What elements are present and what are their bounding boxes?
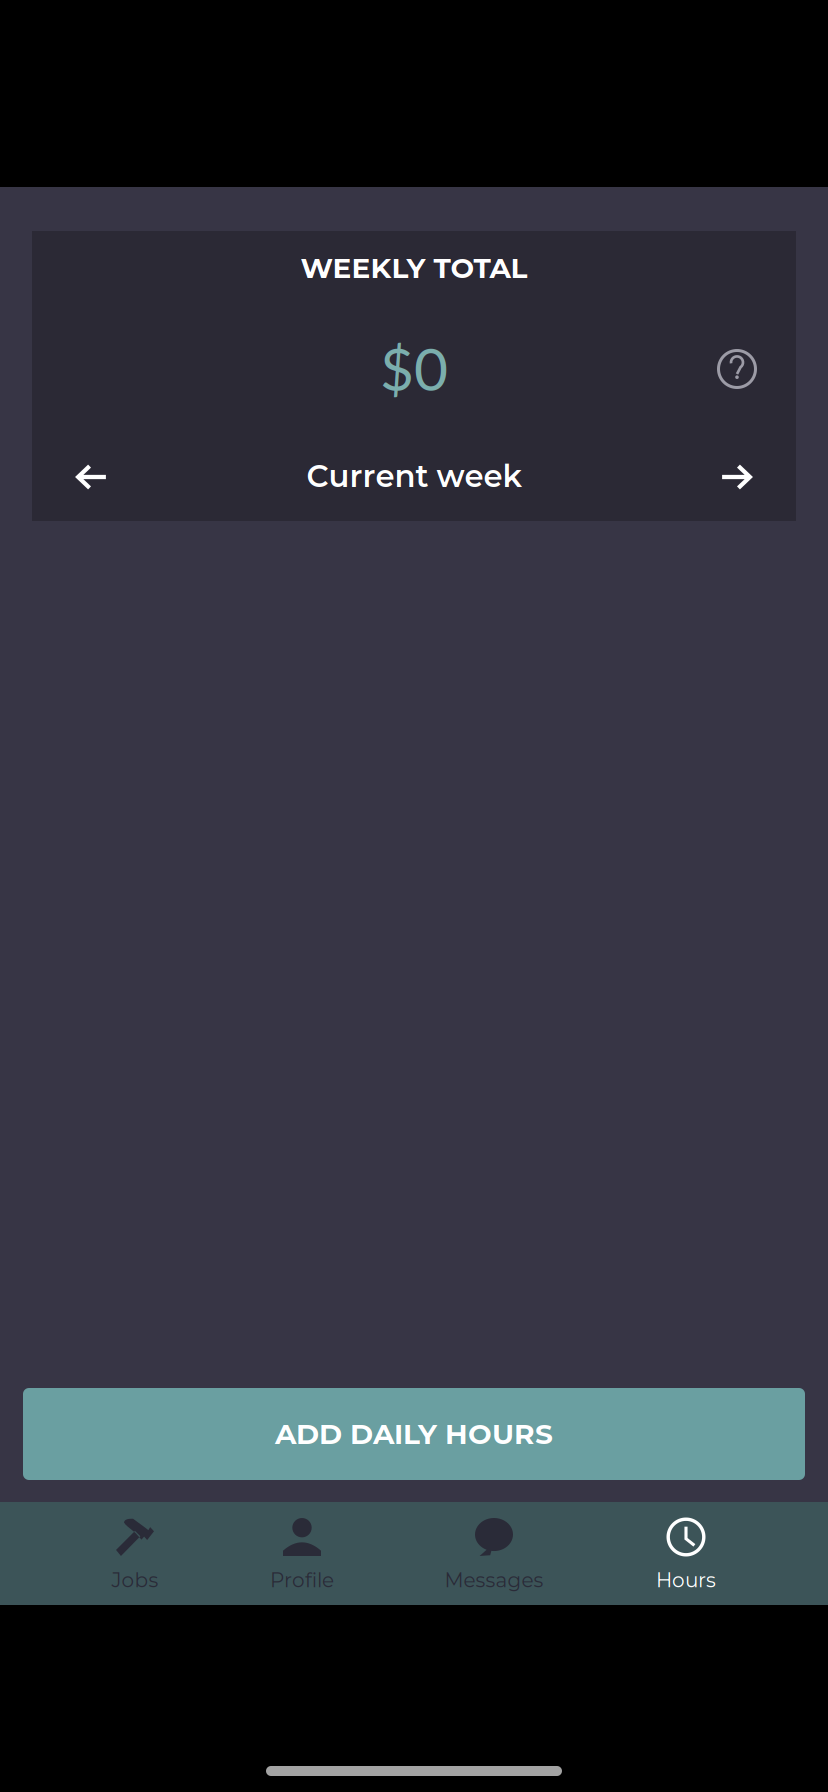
button[interactable]: ADD DAILY HOURS <box>23 1388 805 1480</box>
staticText: Messages <box>444 1568 543 1592</box>
button[interactable]: Hours <box>606 1502 766 1605</box>
staticText: Profile <box>270 1568 334 1592</box>
button[interactable]: Profile <box>222 1502 382 1605</box>
staticText: Jobs <box>111 1568 158 1592</box>
staticText: WEEKLY TOTAL <box>300 251 527 285</box>
staticText: ADD DAILY HOURS <box>275 1417 553 1451</box>
staticText: $0 <box>380 333 448 403</box>
button[interactable]: Next week <box>702 446 770 508</box>
staticText: Current week <box>306 457 521 495</box>
staticText: Hours <box>656 1568 716 1592</box>
button[interactable]: Messages <box>414 1502 574 1605</box>
button[interactable]: Previous week <box>58 446 126 508</box>
button[interactable]: Help <box>703 335 771 403</box>
button[interactable]: Jobs <box>55 1502 215 1605</box>
